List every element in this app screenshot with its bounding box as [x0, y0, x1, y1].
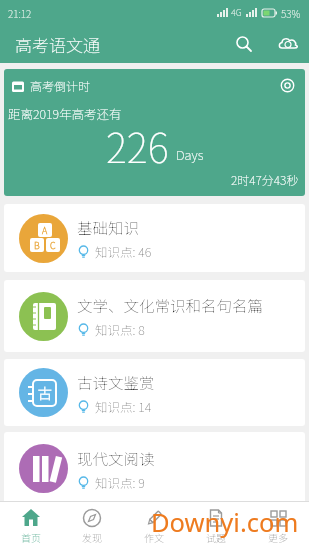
staticText: 现代文阅读: [77, 447, 155, 469]
staticText: 2时47分43秒: [231, 171, 299, 188]
staticText: 53%: [281, 6, 301, 20]
staticText: 古: [38, 383, 52, 403]
button[interactable]: A: [4, 204, 305, 272]
staticText: 知识点: 14: [95, 397, 152, 415]
button[interactable]: [277, 33, 299, 55]
staticText: Downyi.com: [151, 505, 299, 540]
button[interactable]: 文学、文化常识和名句名篇: [4, 280, 305, 352]
button[interactable]: [279, 77, 296, 94]
staticText: 知识点: 9: [95, 473, 145, 491]
staticText: 基础知识: [77, 216, 140, 238]
staticText: 文学、文化常识和名句名篇: [77, 294, 264, 316]
button[interactable]: 首页: [0, 502, 61, 550]
staticText: 首页: [21, 530, 41, 544]
staticText: 更多: [268, 530, 288, 544]
staticText: 古诗文鉴赏: [77, 371, 155, 393]
staticText: B: [34, 239, 40, 252]
staticText: 4G: [231, 6, 242, 19]
staticText: 试题: [206, 530, 226, 544]
button[interactable]: 发现: [61, 502, 123, 550]
button[interactable]: 作文: [123, 502, 185, 550]
staticText: 高考倒计时: [30, 77, 91, 94]
staticText: 距离2019年高考还有: [8, 104, 122, 122]
button[interactable]: [235, 35, 253, 53]
staticText: C: [50, 239, 56, 252]
button[interactable]: 更多: [247, 502, 309, 550]
button[interactable]: 现代文阅读: [4, 432, 305, 505]
staticText: A: [42, 224, 48, 237]
staticText: Days: [176, 145, 204, 164]
staticText: 高考语文通: [15, 32, 100, 57]
button[interactable]: 试题: [185, 502, 247, 550]
button[interactable]: 高考倒计时: [4, 69, 305, 196]
staticText: 知识点: 8: [95, 320, 145, 338]
staticText: 知识点: 46: [95, 242, 152, 260]
staticText: 发现: [82, 530, 102, 544]
button[interactable]: 古: [4, 359, 305, 426]
staticText: 作文: [144, 530, 164, 544]
staticText: 226: [106, 117, 169, 175]
staticText: 21:12: [8, 6, 32, 20]
